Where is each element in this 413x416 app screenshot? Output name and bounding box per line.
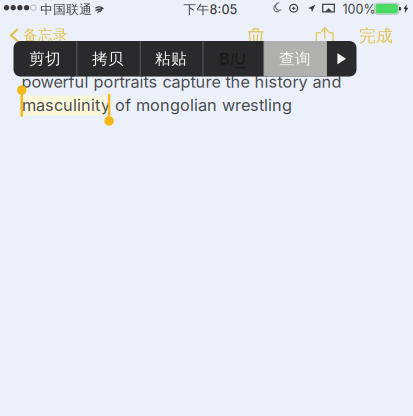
staticText: 100%: [343, 2, 376, 17]
button[interactable]: 剪切: [13, 41, 76, 76]
button[interactable]: Share: [306, 20, 344, 53]
staticText: 下午8:05: [183, 2, 237, 17]
staticText: 粘贴: [155, 49, 187, 69]
staticText: 中国联通: [40, 2, 92, 17]
staticText: masculinity of mongolian wrestling: [22, 95, 292, 115]
staticText: 剪切: [29, 49, 61, 69]
button[interactable]: More: [327, 41, 356, 76]
button[interactable]: 备忘录: [6, 20, 86, 53]
staticText: powerful portraits capture the history a…: [22, 72, 342, 92]
staticText: 备忘录: [23, 26, 68, 44]
staticText: 拷贝: [92, 49, 124, 69]
button[interactable]: Delete: [237, 20, 275, 53]
button[interactable]: 查询: [263, 41, 327, 76]
button[interactable]: 拷贝: [76, 41, 140, 76]
button[interactable]: BIU: [202, 41, 263, 76]
button[interactable]: 完成: [356, 20, 406, 53]
staticText: 完成: [359, 25, 393, 46]
button[interactable]: 粘贴: [140, 41, 202, 76]
staticText: 查询: [279, 49, 311, 69]
staticText: BIU: [219, 49, 246, 68]
